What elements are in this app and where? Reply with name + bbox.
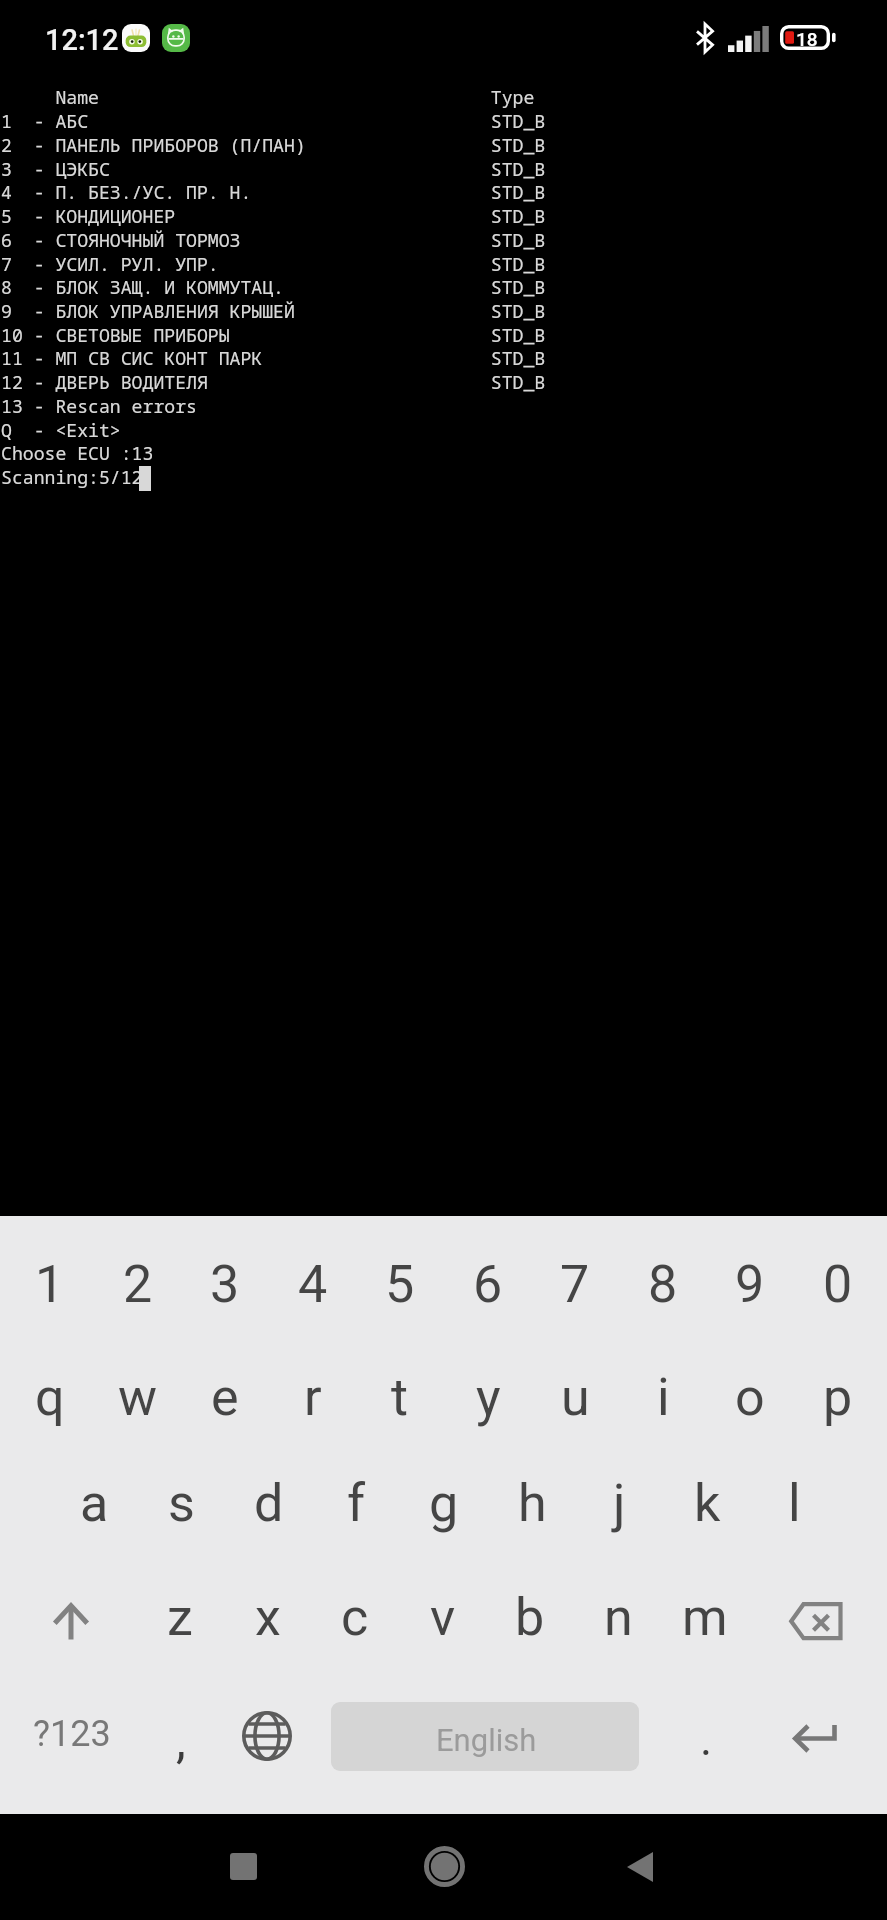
- staticText: a: [80, 1473, 109, 1534]
- staticText: Scanning:5/12: [1, 465, 143, 490]
- staticText: d: [254, 1473, 284, 1534]
- staticText: 1: [35, 1254, 65, 1315]
- staticText: 6: [473, 1254, 503, 1315]
- button[interactable]: .: [661, 1668, 749, 1814]
- staticText: 1 - АБС STD_B: [1, 109, 546, 134]
- staticText: e: [211, 1367, 239, 1428]
- button[interactable]: a: [50, 1451, 138, 1555]
- button[interactable]: u: [531, 1345, 619, 1449]
- staticText: 2 - ПАНЕЛЬ ПРИБОРОВ (П/ПАН) STD_B: [1, 133, 546, 158]
- button[interactable]: k: [663, 1451, 751, 1555]
- button[interactable]: v: [399, 1565, 487, 1669]
- staticText: ?123: [33, 1713, 111, 1755]
- button[interactable]: 0: [794, 1238, 882, 1330]
- button[interactable]: Shift: [0, 1565, 136, 1669]
- button[interactable]: g: [400, 1451, 488, 1555]
- button[interactable]: 5: [356, 1238, 444, 1330]
- staticText: x: [255, 1587, 281, 1648]
- button[interactable]: Backspace: [749, 1565, 887, 1669]
- button[interactable]: Home: [345, 1814, 543, 1920]
- button[interactable]: s: [137, 1451, 225, 1555]
- staticText: English: [436, 1722, 537, 1758]
- staticText: p: [823, 1367, 853, 1428]
- staticText: Choose ECU :13: [1, 441, 154, 466]
- staticText: 4: [298, 1254, 328, 1315]
- staticText: l: [788, 1473, 801, 1534]
- staticText: 5: [385, 1254, 415, 1315]
- staticText: 8: [648, 1254, 678, 1315]
- button[interactable]: r: [269, 1345, 357, 1449]
- button[interactable]: y: [444, 1345, 532, 1449]
- staticText: 3: [210, 1254, 240, 1315]
- button[interactable]: f: [312, 1451, 400, 1555]
- staticText: 12:12: [45, 23, 119, 57]
- button[interactable]: b: [486, 1565, 574, 1669]
- staticText: z: [167, 1587, 193, 1648]
- button[interactable]: n: [574, 1565, 662, 1669]
- staticText: 2: [123, 1254, 153, 1315]
- staticText: r: [304, 1367, 322, 1428]
- staticText: m: [682, 1587, 728, 1648]
- staticText: w: [118, 1367, 158, 1428]
- button[interactable]: i: [619, 1345, 707, 1449]
- staticText: 9: [735, 1254, 765, 1315]
- staticText: 13 - Rescan errors: [1, 394, 197, 419]
- button[interactable]: 1: [6, 1238, 94, 1330]
- button[interactable]: 6: [444, 1238, 532, 1330]
- staticText: v: [430, 1587, 456, 1648]
- button[interactable]: c: [311, 1565, 399, 1669]
- staticText: s: [168, 1473, 195, 1534]
- staticText: 9 - БЛОК УПРАВЛЕНИЯ КРЫШЕЙ STD_B: [1, 299, 546, 324]
- button[interactable]: d: [225, 1451, 313, 1555]
- button[interactable]: o: [706, 1345, 794, 1449]
- staticText: h: [518, 1473, 547, 1534]
- button[interactable]: q: [6, 1345, 94, 1449]
- button[interactable]: Recent apps: [144, 1814, 342, 1920]
- staticText: q: [35, 1367, 65, 1428]
- button[interactable]: 8: [619, 1238, 707, 1330]
- staticText: 7: [560, 1254, 590, 1315]
- staticText: t: [391, 1367, 409, 1428]
- button[interactable]: ?123: [6, 1668, 136, 1814]
- staticText: 12 - ДВЕРЬ ВОДИТЕЛЯ STD_B: [1, 370, 546, 395]
- button[interactable]: e: [181, 1345, 269, 1449]
- staticText: 4 - П. БЕЗ./УС. ПР. Н. STD_B: [1, 180, 546, 205]
- staticText: 5 - КОНДИЦИОНЕР STD_B: [1, 204, 546, 229]
- button[interactable]: 3: [181, 1238, 269, 1330]
- button[interactable]: 4: [269, 1238, 357, 1330]
- staticText: o: [735, 1367, 765, 1428]
- staticText: y: [476, 1367, 501, 1428]
- staticText: i: [657, 1367, 670, 1428]
- staticText: 6 - СТОЯНОЧНЫЙ ТОРМОЗ STD_B: [1, 228, 546, 253]
- button[interactable]: ,: [136, 1668, 224, 1814]
- staticText: f: [347, 1473, 366, 1534]
- button[interactable]: p: [794, 1345, 882, 1449]
- button[interactable]: j: [575, 1451, 663, 1555]
- staticText: 10 - СВЕТОВЫЕ ПРИБОРЫ STD_B: [1, 323, 546, 348]
- staticText: 0: [823, 1254, 853, 1315]
- button[interactable]: 2: [94, 1238, 182, 1330]
- button[interactable]: t: [356, 1345, 444, 1449]
- button[interactable]: Back: [545, 1814, 743, 1920]
- staticText: 18: [796, 28, 818, 50]
- staticText: n: [604, 1587, 633, 1648]
- staticText: c: [341, 1587, 369, 1648]
- staticText: Q - <Exit>: [1, 418, 121, 443]
- button[interactable]: English: [331, 1702, 639, 1771]
- button[interactable]: m: [661, 1565, 749, 1669]
- staticText: k: [694, 1473, 721, 1534]
- button[interactable]: Change language: [224, 1668, 312, 1814]
- button[interactable]: x: [224, 1565, 312, 1669]
- staticText: 7 - УСИЛ. РУЛ. УПР. STD_B: [1, 252, 546, 277]
- button[interactable]: l: [750, 1451, 838, 1555]
- button[interactable]: Enter: [749, 1668, 887, 1814]
- staticText: .: [700, 1712, 713, 1766]
- button[interactable]: h: [488, 1451, 576, 1555]
- staticText: j: [613, 1473, 626, 1534]
- staticText: ,: [176, 1711, 186, 1770]
- staticText: 3 - ЦЭКБС STD_B: [1, 157, 546, 182]
- button[interactable]: 9: [706, 1238, 794, 1330]
- button[interactable]: z: [136, 1565, 224, 1669]
- button[interactable]: w: [94, 1345, 182, 1449]
- button[interactable]: 7: [531, 1238, 619, 1330]
